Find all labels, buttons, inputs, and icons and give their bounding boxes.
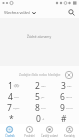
button[interactable]: Backspace (64, 70, 74, 80)
button[interactable]: * (0, 113, 27, 124)
staticText: 0 (36, 113, 41, 124)
button[interactable]: 4 (0, 91, 27, 102)
button[interactable]: 7 (0, 102, 27, 113)
button[interactable]: Search (66, 7, 77, 18)
staticText: PQRS (13, 106, 20, 109)
staticText: WXYZ (66, 106, 73, 109)
button[interactable]: 9 (53, 102, 79, 113)
staticText: ABC (41, 84, 46, 87)
staticText: DEF (67, 84, 72, 87)
staticText: 1 (8, 80, 13, 91)
button[interactable]: 8 (27, 102, 53, 113)
button[interactable]: 1 (0, 80, 27, 91)
staticText: 5 (35, 91, 40, 102)
staticText: Častěji volané (41, 134, 58, 138)
button[interactable]: # (53, 113, 79, 124)
staticText: 2 (35, 80, 40, 91)
staticText: TUV (41, 106, 46, 109)
staticText: Poslední (24, 134, 35, 138)
staticText: Žádné záznamy (27, 34, 52, 38)
button[interactable]: 2 (27, 80, 53, 91)
staticText: 9 (60, 102, 65, 113)
button[interactable]: Kontakty (59, 124, 79, 140)
button[interactable]: Častěji volané (39, 124, 59, 140)
staticText: GHI (14, 95, 19, 98)
button[interactable]: Číselník (0, 124, 19, 140)
staticText: 7 (7, 102, 12, 113)
staticText: Kontakty (64, 134, 75, 138)
button[interactable]: 5 (27, 91, 53, 102)
staticText: JKL (41, 95, 45, 98)
staticText: Zadejte číslo nebo hledejte (19, 72, 61, 76)
button[interactable]: Všechna volání (3, 8, 37, 17)
staticText: MNO (66, 95, 73, 98)
staticText: 8 (35, 102, 40, 113)
button[interactable]: Poslední (19, 124, 39, 140)
staticText: # (61, 113, 67, 124)
staticText: 4 (8, 91, 13, 102)
staticText: Všechna volání (4, 10, 30, 15)
staticText: Číselník (5, 134, 15, 138)
button[interactable]: 0 (27, 113, 53, 124)
staticText: 3 (61, 80, 66, 91)
staticText: + (42, 116, 45, 121)
staticText: 6 (60, 91, 65, 102)
button[interactable]: 6 (53, 91, 79, 102)
button[interactable]: 3 (53, 80, 79, 91)
staticText: * (9, 113, 14, 124)
